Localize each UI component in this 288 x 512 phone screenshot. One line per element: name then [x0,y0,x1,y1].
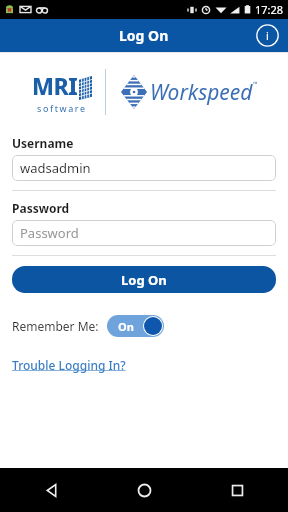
staticText: wadsadmin [20,159,91,177]
button[interactable]: Password [12,220,276,246]
staticText: Password [20,224,79,242]
staticText: i [266,28,269,43]
button[interactable]: wadsadmin [12,155,276,181]
staticText: ™ [253,80,258,88]
staticText: software [37,102,87,114]
staticText: 17:28 [255,2,284,17]
button[interactable]: Log On [12,266,276,293]
button[interactable]: Home [129,475,159,505]
staticText: Password [12,200,70,216]
button[interactable]: Remember Me toggle, On [107,315,164,337]
staticText: Log On [121,271,167,289]
button[interactable]: Trouble Logging In? [12,357,126,373]
staticText: Username [12,135,74,151]
staticText: Log On [119,26,169,45]
staticText: Workspeed [150,78,253,107]
button[interactable]: Information [256,24,279,47]
button[interactable]: Recent apps [222,475,252,505]
staticText: Remember Me: [12,318,99,334]
staticText: On [118,319,134,334]
staticText: MRI [32,70,78,101]
button[interactable]: Back [36,475,66,505]
